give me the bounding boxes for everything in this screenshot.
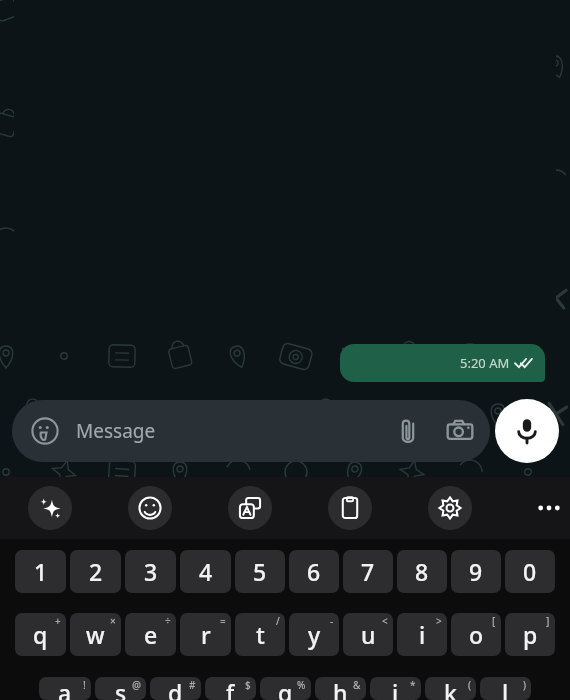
button[interactable]: Emoji	[128, 486, 172, 530]
staticText: k	[444, 677, 457, 700]
staticText: [	[492, 614, 496, 628]
button[interactable]: Settings	[428, 486, 472, 530]
staticText: f	[226, 677, 235, 700]
staticText: ×	[110, 614, 116, 628]
button[interactable]: u	[343, 613, 393, 656]
button[interactable]: 9	[451, 550, 501, 593]
staticText: j	[392, 677, 399, 700]
button[interactable]: r	[180, 613, 231, 656]
staticText: ÷	[165, 614, 171, 628]
button[interactable]: 6	[289, 550, 339, 593]
button[interactable]: More options	[528, 486, 570, 530]
staticText: s	[115, 677, 127, 700]
staticText: 8	[415, 556, 429, 587]
staticText: d	[168, 677, 183, 700]
button[interactable]: 4	[180, 550, 231, 593]
button[interactable]: k	[425, 677, 476, 700]
button[interactable]: t	[235, 613, 285, 656]
button[interactable]: o	[451, 613, 501, 656]
button[interactable]: f	[205, 677, 256, 700]
button[interactable]: h	[315, 677, 366, 700]
staticText: 1	[34, 556, 48, 587]
button[interactable]: e	[125, 613, 176, 656]
button[interactable]: Stickers	[28, 414, 62, 448]
button[interactable]: 2	[70, 550, 121, 593]
staticText: %	[297, 678, 306, 692]
staticText: 9	[469, 556, 483, 587]
staticText: u	[361, 619, 376, 650]
staticText: q	[33, 619, 48, 650]
button[interactable]: g	[260, 677, 311, 700]
staticText: *	[410, 678, 416, 692]
staticText: )	[523, 678, 526, 692]
staticText: 4	[199, 556, 213, 587]
staticText: g	[278, 677, 293, 700]
staticText: 5:20 AM	[460, 354, 510, 372]
staticText: >	[436, 614, 442, 628]
staticText: 0	[523, 556, 537, 587]
button[interactable]: Stickers	[12, 400, 490, 462]
staticText: -	[330, 614, 334, 628]
staticText: =	[220, 614, 226, 628]
staticText: <	[382, 614, 388, 628]
staticText: e	[144, 619, 158, 650]
staticText: #	[189, 678, 196, 692]
button[interactable]: a	[39, 677, 91, 700]
staticText: a	[58, 677, 72, 700]
button[interactable]: Camera	[440, 411, 480, 451]
staticText: i	[419, 619, 426, 650]
button[interactable]: w	[70, 613, 121, 656]
button[interactable]: Translate	[228, 486, 272, 530]
button[interactable]: s	[95, 677, 146, 700]
staticText: o	[469, 619, 484, 650]
staticText: t	[256, 619, 265, 650]
staticText: 5	[253, 556, 267, 587]
staticText: 3	[144, 556, 158, 587]
button[interactable]: j	[370, 677, 421, 700]
staticText: y	[308, 619, 321, 650]
button[interactable]: Voice message	[495, 399, 559, 463]
button[interactable]: d	[150, 677, 201, 700]
button[interactable]: p	[505, 613, 555, 656]
button[interactable]: AI assist	[28, 486, 72, 530]
button[interactable]: 5	[235, 550, 285, 593]
button[interactable]: y	[289, 613, 339, 656]
staticText: 6	[307, 556, 321, 587]
staticText: 7	[361, 556, 375, 587]
staticText: ]	[546, 614, 550, 628]
button[interactable]: 7	[343, 550, 393, 593]
staticText: p	[523, 619, 538, 650]
button[interactable]: q	[15, 613, 66, 656]
staticText: w	[86, 619, 105, 650]
button[interactable]: 0	[505, 550, 555, 593]
staticText: l	[502, 677, 509, 700]
staticText: $	[245, 678, 251, 692]
button[interactable]: 1	[15, 550, 66, 593]
staticText: @	[132, 678, 141, 692]
button[interactable]: 3	[125, 550, 176, 593]
staticText: !	[83, 678, 86, 692]
button[interactable]: 8	[397, 550, 447, 593]
staticText: /	[276, 614, 280, 628]
button[interactable]: Attach	[388, 411, 428, 451]
button[interactable]: l	[480, 677, 531, 700]
staticText: +	[55, 614, 61, 628]
button[interactable]: i	[397, 613, 447, 656]
staticText: Message	[76, 418, 156, 444]
button[interactable]: 5:20 AM	[340, 344, 545, 382]
button[interactable]: Clipboard	[328, 486, 372, 530]
staticText: 2	[89, 556, 103, 587]
staticText: h	[333, 677, 348, 700]
staticText: (	[468, 678, 471, 692]
staticText: &	[353, 678, 361, 692]
staticText: r	[201, 619, 211, 650]
